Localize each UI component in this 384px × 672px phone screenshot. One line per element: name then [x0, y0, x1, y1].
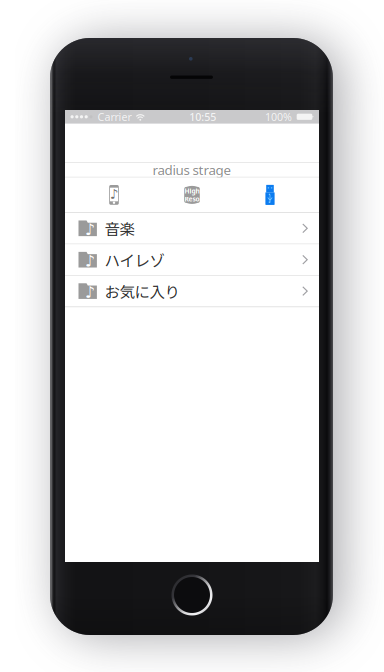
- button[interactable]: High resolution audio: [170, 178, 214, 212]
- button[interactable]: ♪: [65, 276, 319, 306]
- staticText: ♪: [85, 283, 95, 301]
- button[interactable]: ♪: [65, 244, 319, 275]
- staticText: Reso: [184, 194, 199, 203]
- staticText: お気に入り: [104, 280, 179, 302]
- staticText: radius strage: [152, 161, 231, 179]
- button[interactable]: Device music: [92, 178, 136, 212]
- staticText: 音楽: [104, 217, 134, 239]
- staticText: 10:55: [189, 110, 216, 124]
- staticText: 100%: [265, 110, 292, 124]
- staticText: ♪: [85, 220, 95, 239]
- staticText: High: [184, 186, 199, 195]
- staticText: Carrier: [97, 110, 131, 124]
- staticText: ハイレゾ: [104, 248, 164, 271]
- staticText: ♪: [110, 186, 119, 202]
- button[interactable]: ♪: [65, 213, 319, 244]
- staticText: ♪: [85, 252, 95, 270]
- button[interactable]: USB storage: [248, 178, 292, 212]
